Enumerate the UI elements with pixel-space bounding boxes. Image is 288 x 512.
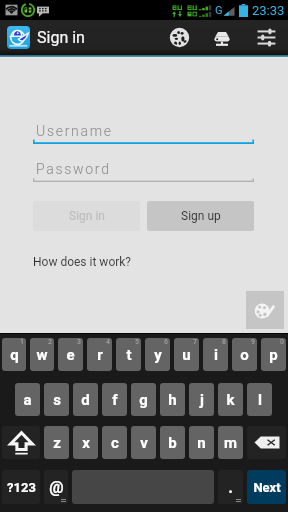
button[interactable]: Language (158, 20, 200, 55)
staticText: 1 (20, 338, 24, 346)
button[interactable]: p (261, 338, 286, 371)
staticText: l (258, 391, 262, 409)
staticText: t (126, 346, 132, 364)
staticText: Username (36, 123, 113, 139)
button[interactable]: d (73, 383, 98, 416)
button[interactable]: u (174, 338, 199, 371)
staticText: @ (49, 478, 64, 497)
button[interactable]: How does it work? (33, 255, 132, 269)
button[interactable]: Server (200, 20, 244, 55)
button[interactable]: Sign in (0, 20, 158, 55)
staticText: n (197, 434, 206, 452)
staticText: 0 (280, 338, 284, 346)
button[interactable]: @ (44, 470, 68, 504)
button[interactable]: a (15, 383, 40, 416)
staticText: 4 (106, 338, 110, 346)
staticText: 23:33 (252, 3, 285, 18)
button[interactable]: Change keyboard theme (246, 291, 284, 329)
staticText: Sign up (181, 209, 221, 223)
button[interactable]: v (131, 426, 156, 459)
button[interactable]: Sign in (33, 201, 140, 231)
staticText: 2 (48, 338, 52, 346)
staticText: v (140, 434, 148, 452)
staticText: Next (253, 480, 281, 495)
staticText: e (66, 346, 75, 364)
button[interactable]: Password (33, 159, 254, 182)
staticText: y (154, 346, 162, 364)
button[interactable]: w (30, 338, 54, 371)
staticText: . (228, 478, 233, 497)
staticText: G (215, 4, 223, 17)
button[interactable]: i (203, 338, 228, 371)
button[interactable]: r (87, 338, 112, 371)
staticText: q (10, 346, 19, 364)
button[interactable]: e (58, 338, 83, 371)
staticText: j (200, 391, 204, 409)
button[interactable]: l (247, 383, 272, 416)
staticText: Sign in (37, 28, 85, 47)
staticText: ?123 (7, 480, 36, 495)
staticText: d (81, 391, 90, 409)
staticText: u (182, 346, 191, 364)
button[interactable]: q (2, 338, 26, 371)
button[interactable]: m (218, 426, 243, 459)
staticText: z (53, 434, 61, 452)
staticText: 8 (222, 338, 226, 346)
staticText: Password (36, 161, 111, 177)
staticText: f (112, 391, 118, 409)
staticText: w (36, 346, 48, 364)
staticText: o (240, 346, 249, 364)
button[interactable]: Next (247, 470, 286, 504)
staticText: 6 (164, 338, 168, 346)
button[interactable]: n (189, 426, 214, 459)
button[interactable]: k (218, 383, 243, 416)
staticText: 9 (251, 338, 255, 346)
staticText: h (168, 391, 177, 409)
staticText: p (269, 346, 278, 364)
button[interactable]: g (131, 383, 156, 416)
button[interactable]: ?123 (2, 470, 40, 504)
staticText: a (23, 391, 32, 409)
staticText: How does it work? (33, 255, 132, 269)
button[interactable]: Backspace (247, 426, 286, 459)
button[interactable]: y (145, 338, 170, 371)
button[interactable]: Username (33, 121, 254, 144)
button[interactable]: c (102, 426, 127, 459)
button[interactable]: b (160, 426, 185, 459)
staticText: i (214, 346, 218, 364)
button[interactable]: . (218, 470, 243, 504)
staticText: 3 (77, 338, 81, 346)
staticText: s (53, 391, 61, 409)
button[interactable]: o (232, 338, 257, 371)
staticText: r (97, 346, 103, 364)
button[interactable]: j (189, 383, 214, 416)
button[interactable]: z (44, 426, 69, 459)
staticText: g (139, 391, 148, 409)
staticText: k (226, 391, 235, 409)
staticText: b (168, 434, 177, 452)
button[interactable]: h (160, 383, 185, 416)
staticText: 5 (135, 338, 139, 346)
staticText: x (82, 434, 90, 452)
button[interactable]: Sign up (147, 201, 254, 231)
button[interactable]: s (44, 383, 69, 416)
staticText: Sign in (69, 209, 105, 223)
button[interactable]: t (116, 338, 141, 371)
button[interactable]: x (73, 426, 98, 459)
staticText: c (111, 434, 119, 452)
button[interactable]: f (102, 383, 127, 416)
staticText: m (224, 434, 237, 452)
staticText: 7 (193, 338, 197, 346)
button[interactable]: Settings (244, 20, 288, 55)
button[interactable]: Shift (2, 426, 40, 459)
